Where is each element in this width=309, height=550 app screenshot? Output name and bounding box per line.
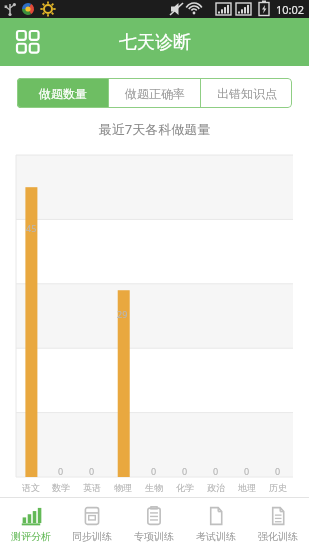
button[interactable]: 考试训练	[185, 498, 247, 550]
staticText: 测评分析	[11, 530, 51, 543]
button[interactable]: 出错知识点	[201, 78, 292, 108]
staticText: 英语	[83, 482, 101, 493]
staticText: 物理	[114, 482, 132, 493]
button[interactable]: Menu	[8, 22, 48, 62]
staticText: 考试训练	[196, 530, 236, 543]
staticText: 做题正确率	[125, 86, 185, 101]
button[interactable]: 测评分析	[0, 498, 61, 550]
button[interactable]: 专项训练	[123, 498, 185, 550]
staticText: 数学	[52, 482, 70, 493]
staticText: 历史	[269, 482, 287, 493]
staticText: 45	[26, 222, 37, 234]
staticText: 最近7天各科做题量	[0, 120, 309, 138]
staticText: 同步训练	[72, 530, 112, 543]
staticText: 0	[151, 465, 157, 477]
staticText: 政治	[207, 482, 225, 493]
staticText: 专项训练	[134, 530, 174, 543]
staticText: 0	[275, 465, 281, 477]
staticText: 29	[117, 308, 128, 320]
button[interactable]: 同步训练	[61, 498, 123, 550]
staticText: 0	[89, 465, 95, 477]
staticText: 出错知识点	[217, 86, 277, 101]
staticText: 10:02	[276, 2, 305, 17]
staticText: 0	[244, 465, 250, 477]
staticText: 七天诊断	[119, 31, 191, 54]
button[interactable]: 做题正确率	[109, 78, 200, 108]
staticText: 做题数量	[39, 86, 87, 101]
staticText: 语文	[22, 482, 40, 493]
staticText: 0	[213, 465, 219, 477]
button[interactable]: 做题数量	[17, 78, 108, 108]
staticText: 化学	[176, 482, 194, 493]
staticText: 强化训练	[258, 530, 298, 543]
staticText: 0	[182, 465, 188, 477]
button[interactable]: 强化训练	[247, 498, 309, 550]
staticText: 地理	[238, 482, 256, 493]
staticText: 生物	[145, 482, 163, 493]
staticText: 0	[58, 465, 64, 477]
